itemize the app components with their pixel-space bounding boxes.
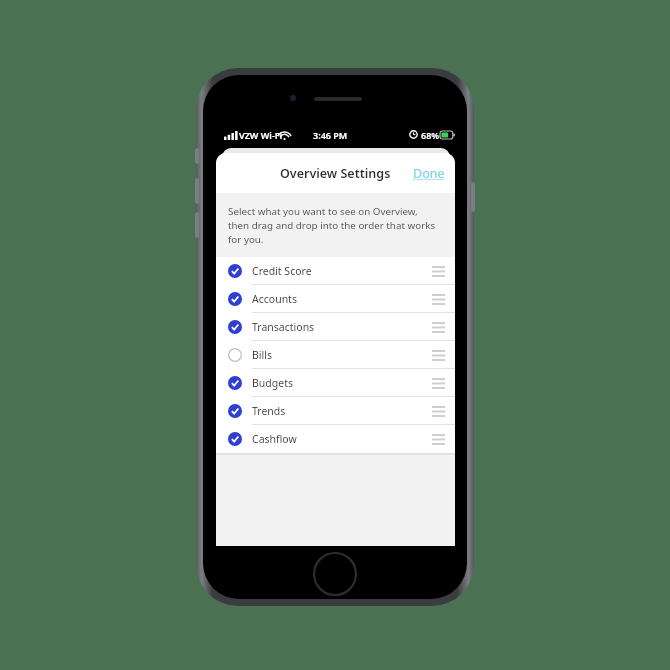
staticText: Cashflow	[252, 432, 297, 446]
button[interactable]: Done	[403, 159, 455, 188]
staticText: Overview Settings	[280, 165, 391, 182]
staticText: 68%	[421, 129, 440, 141]
staticText: 3:46 PM	[313, 129, 348, 141]
button[interactable]: Transactions	[216, 313, 455, 341]
button[interactable]: Credit Score	[216, 257, 455, 285]
button[interactable]: Trends	[216, 397, 455, 425]
staticText: Accounts	[252, 292, 297, 306]
button[interactable]: Accounts	[216, 285, 455, 313]
staticText: Trends	[252, 404, 286, 418]
button[interactable]: Cashflow	[216, 425, 455, 453]
button[interactable]: Budgets	[216, 369, 455, 397]
staticText: Bills	[252, 348, 272, 362]
staticText: Credit Score	[252, 264, 312, 278]
staticText: Select what you want to see on Overview,…	[228, 205, 441, 246]
staticText: Budgets	[252, 376, 293, 390]
staticText: VZW Wi-Fi	[239, 129, 283, 141]
button[interactable]: Bills	[216, 341, 455, 369]
staticText: Transactions	[252, 320, 315, 334]
staticText: Done	[413, 165, 445, 182]
